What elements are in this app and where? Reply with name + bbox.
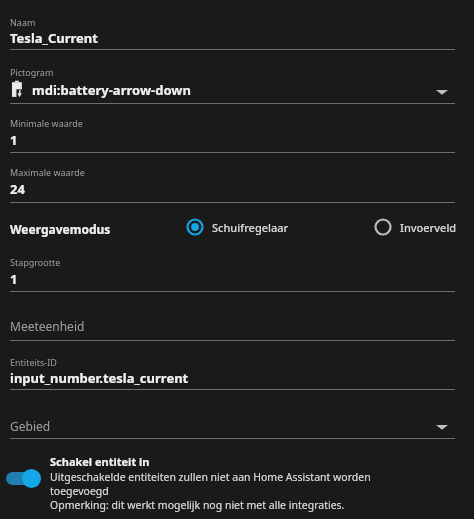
button[interactable] (0, 162, 474, 204)
button[interactable] (0, 310, 474, 342)
button[interactable] (0, 112, 474, 154)
button[interactable]: Pictogram kiezen (434, 86, 450, 98)
button[interactable]: Schuifregelaar (186, 218, 289, 236)
staticText: Pictogram (10, 66, 54, 78)
button[interactable]: Invoerveld (374, 218, 457, 236)
staticText: Naam (10, 16, 36, 28)
staticText: Stapgrootte (10, 256, 61, 268)
button[interactable] (0, 252, 474, 294)
button[interactable] (0, 410, 474, 440)
button[interactable] (0, 352, 474, 390)
button[interactable] (0, 10, 474, 52)
staticText: Tesla_Current (10, 29, 98, 47)
staticText: Weergavemodus (10, 221, 111, 237)
staticText: Uitgeschakelde entiteiten zullen niet aa… (50, 470, 371, 498)
staticText: Opmerking: dit werkt mogelijk nog niet m… (50, 498, 345, 512)
staticText: Meeteenheid (10, 318, 85, 334)
button[interactable] (0, 62, 474, 106)
staticText: 1 (10, 131, 18, 149)
staticText: Minimale waarde (10, 117, 83, 129)
staticText: 24 (10, 180, 25, 198)
staticText: mdi:battery-arrow-down (32, 81, 191, 99)
staticText: Maximale waarde (10, 166, 85, 178)
staticText: input_number.tesla_current (10, 369, 189, 387)
staticText: Schakel entiteit in (50, 454, 150, 469)
staticText: Gebied (10, 418, 51, 434)
staticText: Entiteits-ID (10, 356, 57, 368)
staticText: Schuifregelaar (212, 220, 289, 235)
staticText: Invoerveld (400, 220, 457, 235)
button[interactable]: Gebied kiezen (434, 421, 450, 433)
staticText: 1 (10, 270, 18, 288)
button[interactable]: Schakel entiteit in (0, 448, 474, 518)
